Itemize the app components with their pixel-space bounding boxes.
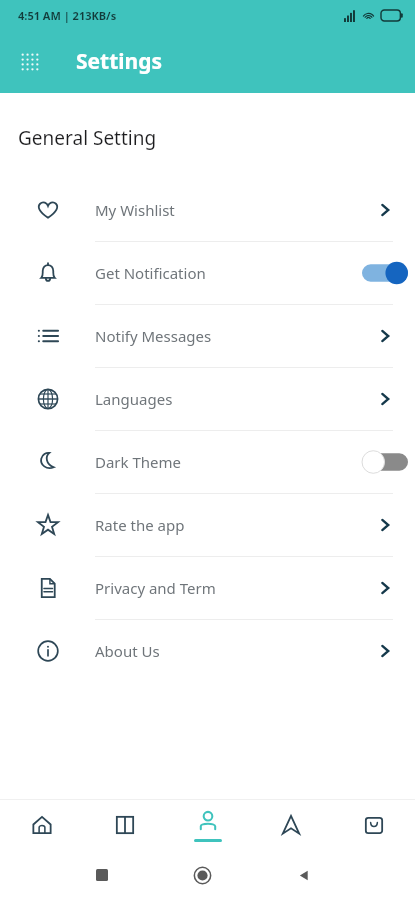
button[interactable]: Languages bbox=[0, 368, 415, 430]
button[interactable]: Notify Messages bbox=[0, 305, 415, 367]
button[interactable]: Bag bbox=[332, 800, 415, 850]
button[interactable]: My Wishlist bbox=[0, 179, 415, 241]
staticText: 4:51 AM | 213KB/s bbox=[18, 8, 117, 23]
button[interactable]: Back bbox=[253, 869, 354, 882]
button[interactable]: Catalog bbox=[83, 800, 166, 850]
staticText: About Us bbox=[95, 641, 355, 661]
button[interactable]: Recents bbox=[51, 869, 152, 881]
staticText: Dark Theme bbox=[95, 452, 355, 472]
button[interactable]: Privacy and Term bbox=[0, 557, 415, 619]
staticText: Get Notification bbox=[95, 263, 355, 283]
staticText: Notify Messages bbox=[95, 326, 355, 346]
staticText: Privacy and Term bbox=[95, 578, 355, 598]
staticText: Languages bbox=[95, 389, 355, 409]
button[interactable]: Rate the app bbox=[0, 494, 415, 556]
button[interactable]: About Us bbox=[0, 620, 415, 682]
button[interactable]: Menu bbox=[14, 46, 46, 78]
button[interactable]: Home bbox=[0, 800, 83, 850]
staticText: General Setting bbox=[18, 125, 157, 151]
button[interactable]: Profile bbox=[166, 800, 249, 850]
button[interactable]: Home bbox=[152, 867, 253, 884]
staticText: Settings bbox=[76, 47, 163, 76]
staticText: My Wishlist bbox=[95, 200, 355, 220]
button[interactable]: Get Notification bbox=[0, 242, 415, 304]
button[interactable]: Dark Theme bbox=[0, 431, 415, 493]
staticText: Rate the app bbox=[95, 515, 355, 535]
button[interactable]: Navigate bbox=[249, 800, 332, 850]
